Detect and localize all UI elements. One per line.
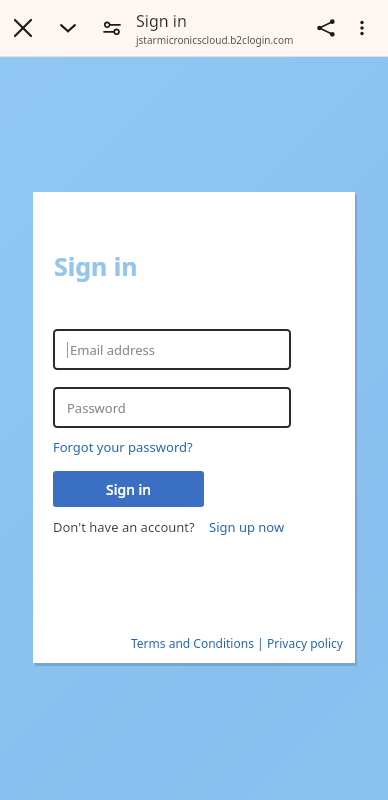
button[interactable]: Sign in bbox=[136, 10, 306, 47]
button[interactable]: Email address bbox=[53, 329, 291, 370]
button[interactable]: Share bbox=[306, 8, 346, 48]
button[interactable]: Close bbox=[5, 10, 41, 46]
staticText: Email address bbox=[70, 341, 155, 359]
button[interactable]: Sign in bbox=[53, 471, 204, 507]
button[interactable]: Site settings bbox=[94, 10, 130, 46]
button[interactable]: Privacy policy bbox=[267, 635, 343, 651]
staticText: Sign in bbox=[106, 480, 152, 499]
staticText: Don't have an account? bbox=[53, 518, 195, 536]
staticText: Sign in bbox=[54, 249, 138, 283]
staticText: Sign in bbox=[136, 10, 187, 32]
staticText: jstarmicronicscloud.b2clogin.com bbox=[136, 33, 294, 47]
staticText: Password bbox=[67, 399, 126, 417]
button[interactable]: More options bbox=[342, 8, 382, 48]
staticText: | bbox=[254, 635, 267, 651]
button[interactable]: Password bbox=[53, 387, 291, 428]
button[interactable]: Sign up now bbox=[209, 518, 285, 536]
button[interactable]: Forgot your password? bbox=[53, 437, 193, 457]
button[interactable]: Expand bbox=[50, 10, 86, 46]
button[interactable]: Terms and Conditions bbox=[131, 635, 254, 651]
